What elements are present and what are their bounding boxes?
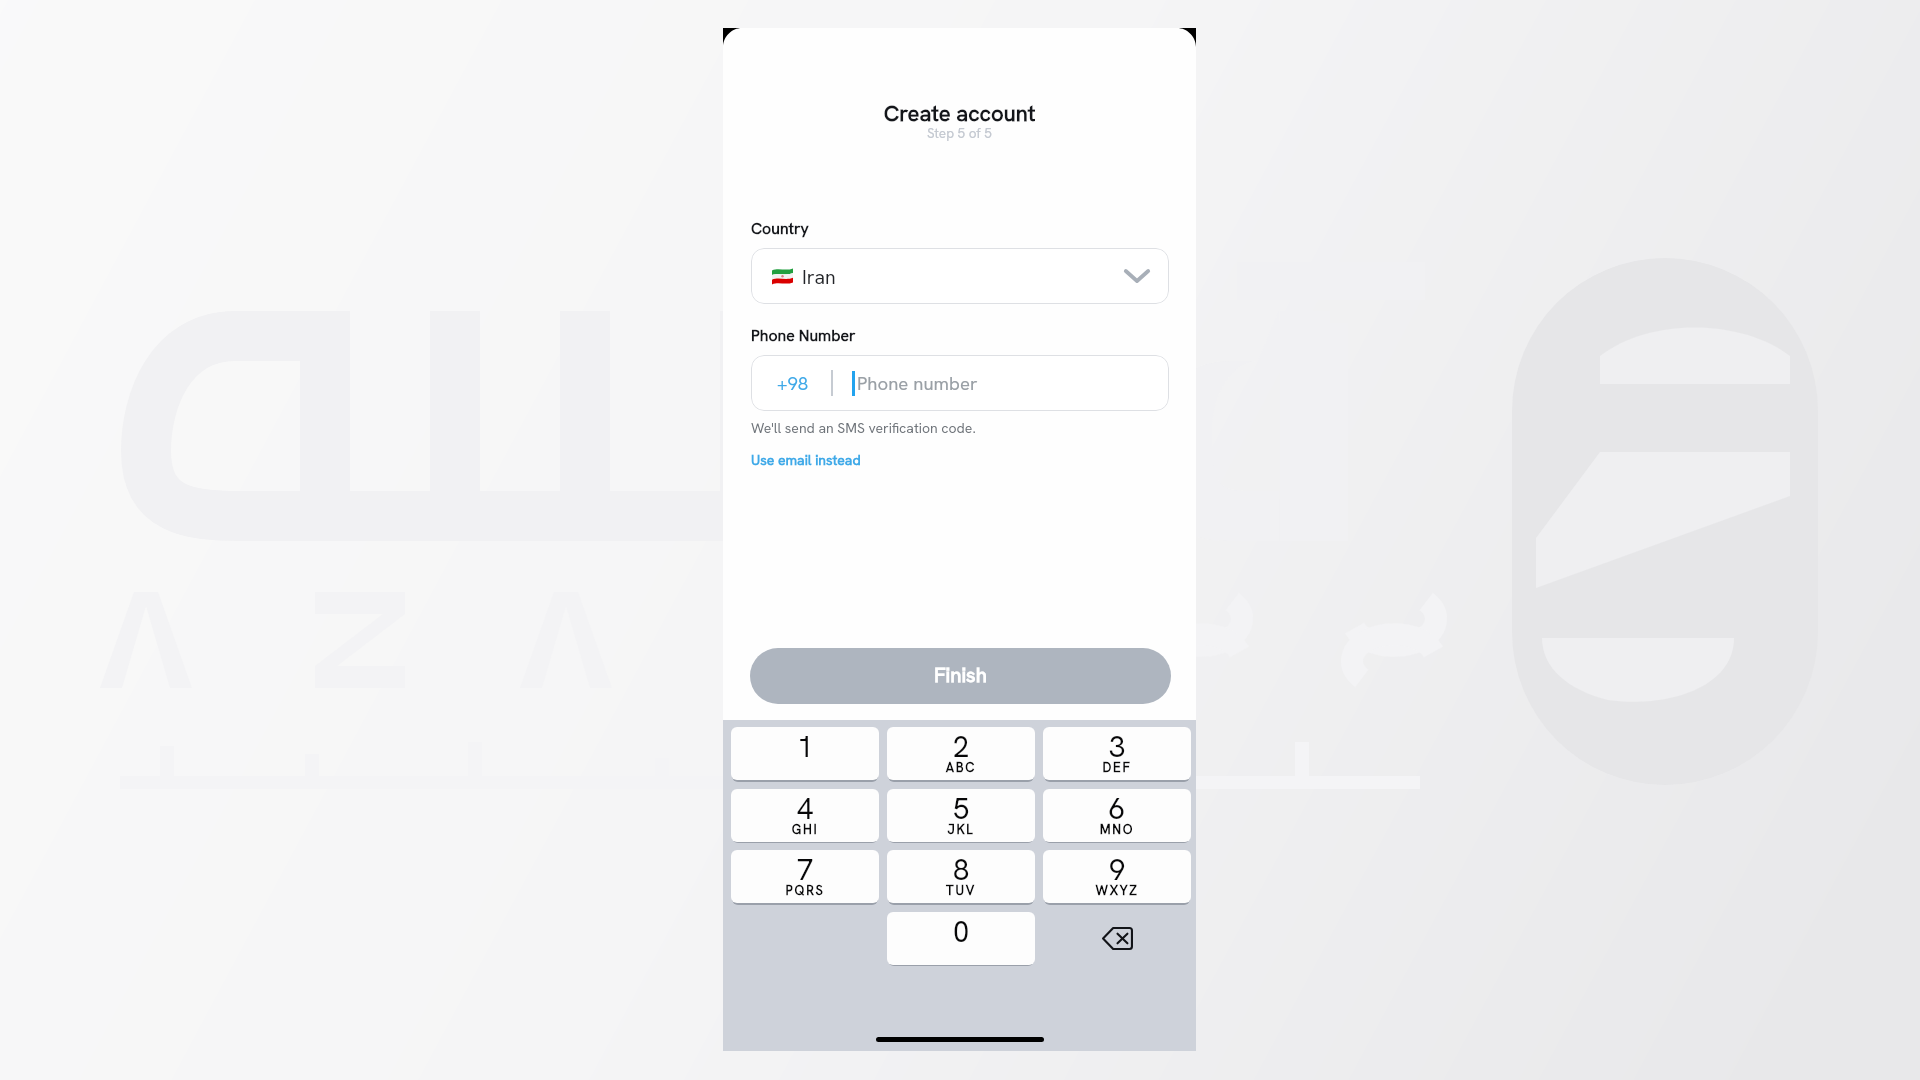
staticText: Phone number — [857, 371, 978, 395]
button[interactable]: +98 — [751, 355, 1169, 411]
staticText: DEF — [1043, 759, 1191, 776]
staticText: Step 5 of 5 — [723, 124, 1196, 142]
button[interactable]: 0 — [887, 912, 1035, 965]
staticText: JKL — [887, 821, 1035, 838]
staticText: PQRS — [731, 882, 879, 899]
staticText: 7 — [731, 851, 879, 889]
button[interactable]: 5 — [887, 789, 1035, 842]
staticText: +98 — [777, 371, 809, 395]
button[interactable]: 8 — [887, 850, 1035, 903]
button[interactable]: 9 — [1043, 850, 1191, 903]
staticText: 4 — [731, 790, 879, 828]
staticText: Iran — [802, 264, 836, 289]
staticText: TUV — [887, 882, 1035, 899]
staticText: We'll send an SMS verification code. — [751, 419, 976, 437]
staticText: GHI — [731, 821, 879, 838]
staticText: 6 — [1043, 790, 1191, 828]
button[interactable]: 4 — [731, 789, 879, 842]
staticText: 8 — [887, 851, 1035, 889]
button[interactable]: 1 — [731, 727, 879, 780]
staticText: 3 — [1043, 728, 1191, 766]
staticText: WXYZ — [1043, 882, 1191, 899]
button[interactable]: Finish — [750, 648, 1171, 704]
staticText: Phone Number — [751, 325, 856, 346]
staticText: MNO — [1043, 821, 1191, 838]
staticText: ABC — [887, 759, 1035, 776]
staticText: Create account — [723, 99, 1196, 128]
staticText: 9 — [1043, 851, 1191, 889]
staticText: 0 — [887, 913, 1035, 951]
staticText: Country — [751, 218, 809, 239]
button[interactable]: 2 — [887, 727, 1035, 780]
staticText: Finish — [934, 661, 987, 688]
other: Backspace — [1102, 927, 1133, 950]
button[interactable]: 7 — [731, 850, 879, 903]
button[interactable]: Use email instead — [751, 451, 861, 469]
staticText: 1 — [731, 728, 879, 766]
button[interactable]: 6 — [1043, 789, 1191, 842]
button[interactable]: 3 — [1043, 727, 1191, 780]
button[interactable]: Iran — [751, 248, 1169, 304]
button[interactable]: Backspace — [1043, 912, 1191, 965]
staticText: 2 — [887, 728, 1035, 766]
other: Open country list — [1123, 266, 1151, 286]
staticText: 5 — [887, 790, 1035, 828]
